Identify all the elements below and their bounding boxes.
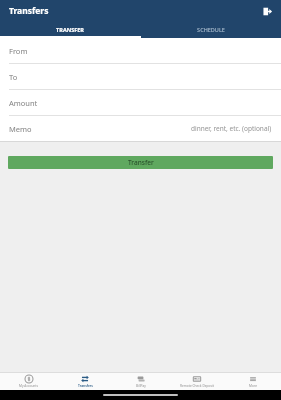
- staticText: Memo: [9, 124, 32, 134]
- staticText: Remote Check Deposit: [180, 384, 214, 388]
- button[interactable]: More: [225, 372, 281, 390]
- staticText: To: [9, 72, 18, 82]
- button[interactable]: TRANSFER: [0, 21, 140, 38]
- staticText: Transfers: [9, 5, 49, 17]
- staticText: BillPay: [136, 384, 146, 388]
- button[interactable]: Transfers: [57, 372, 113, 390]
- button[interactable]: BillPay: [113, 372, 169, 390]
- button[interactable]: From: [0, 38, 281, 63]
- staticText: Transfers: [78, 384, 93, 388]
- staticText: SCHEDULE: [197, 26, 225, 33]
- staticText: More: [249, 384, 257, 388]
- button[interactable]: Transfer: [8, 156, 273, 169]
- button[interactable]: To: [0, 64, 281, 89]
- button[interactable]: My Accounts: [0, 372, 57, 390]
- button[interactable]: Amount: [0, 90, 281, 115]
- button[interactable]: Memo: [0, 116, 281, 141]
- staticText: dinner, rent, etc. (optional): [191, 124, 272, 133]
- staticText: TRANSFER: [56, 26, 84, 33]
- button[interactable]: Log out: [259, 3, 275, 19]
- staticText: My Accounts: [19, 384, 38, 388]
- staticText: Amount: [9, 98, 38, 108]
- button[interactable]: Remote Check Deposit: [169, 372, 225, 390]
- staticText: From: [9, 46, 28, 56]
- staticText: Transfer: [128, 158, 154, 167]
- button[interactable]: SCHEDULE: [140, 21, 281, 38]
